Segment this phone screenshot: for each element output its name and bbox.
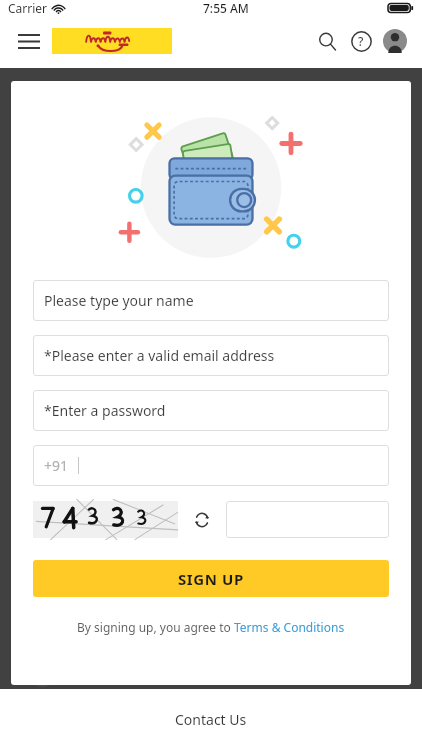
button[interactable]: Help [344, 24, 378, 58]
staticText: *Please enter a valid email address [44, 346, 275, 365]
button[interactable]: +91 [33, 445, 389, 486]
staticText: Carrier [8, 0, 48, 16]
button[interactable]: Contact Us [159, 702, 263, 737]
button[interactable]: *Please enter a valid email address [33, 335, 389, 376]
staticText: 7:55 AM [203, 0, 249, 16]
button[interactable]: Open navigation menu [10, 22, 48, 60]
button[interactable]: SIGN UP [33, 560, 389, 597]
button[interactable]: Enter captcha [226, 501, 389, 538]
staticText: +91 [44, 456, 69, 475]
staticText: SIGN UP [178, 569, 244, 589]
button[interactable]: Please type your name [33, 280, 389, 321]
staticText: *Enter a password [44, 401, 166, 420]
staticText: By signing up, you agree to [77, 619, 234, 635]
button[interactable]: My Happiness City home [52, 28, 172, 54]
button[interactable]: *Enter a password [33, 390, 389, 431]
staticText: Contact Us [175, 710, 247, 729]
button[interactable]: Search [310, 24, 344, 58]
staticText: Please type your name [44, 291, 194, 310]
button[interactable]: Refresh captcha [191, 509, 213, 531]
staticText: ? [358, 33, 364, 49]
staticText: Terms & Conditions [234, 619, 345, 635]
button[interactable]: Terms & Conditions [234, 619, 345, 635]
button[interactable]: Profile [378, 24, 412, 58]
